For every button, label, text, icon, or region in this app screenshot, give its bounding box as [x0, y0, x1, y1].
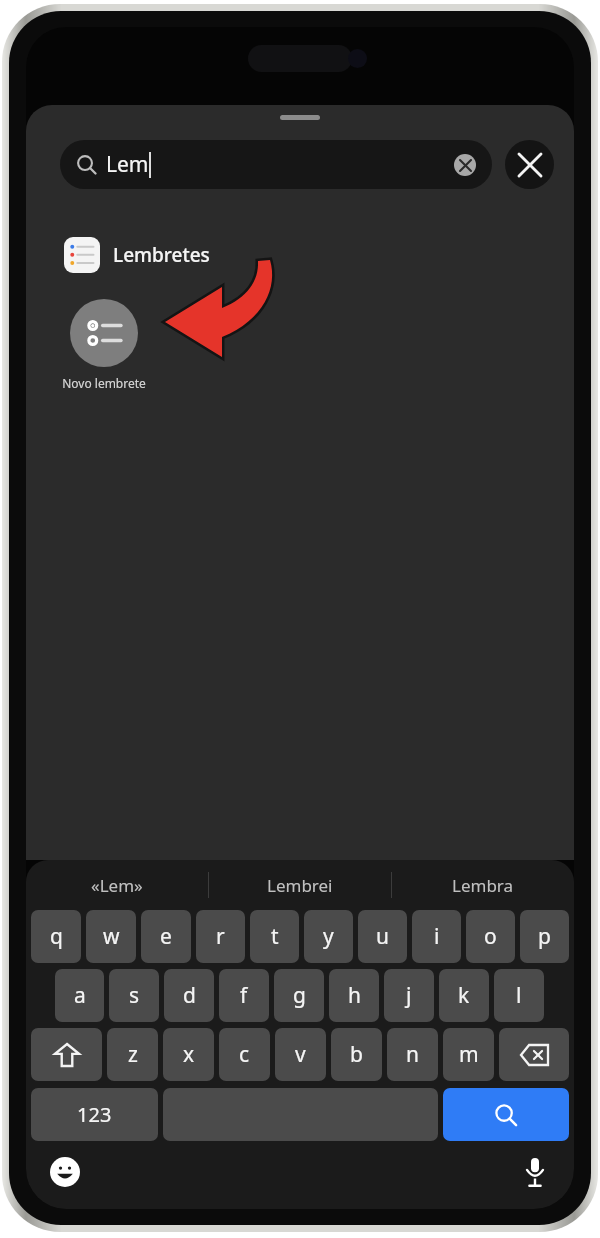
button[interactable]: l — [494, 969, 544, 1022]
button[interactable]: y — [304, 910, 353, 963]
button[interactable]: s — [109, 969, 159, 1022]
staticText: Lem — [106, 150, 149, 179]
button[interactable]: Emoji — [48, 1155, 82, 1189]
staticText: c — [239, 1040, 250, 1069]
button[interactable]: m — [443, 1028, 494, 1081]
button[interactable]: Novo lembrete — [60, 299, 148, 391]
button[interactable]: z — [107, 1028, 158, 1081]
staticText: h — [348, 981, 361, 1010]
button[interactable]: b — [331, 1028, 382, 1081]
button[interactable]: c — [219, 1028, 270, 1081]
button[interactable]: Search — [443, 1088, 569, 1141]
staticText: j — [406, 981, 412, 1010]
staticText: Lembrei — [267, 874, 333, 897]
button[interactable]: a — [55, 969, 104, 1022]
button[interactable]: u — [358, 910, 407, 963]
staticText: i — [434, 922, 440, 951]
staticText: n — [406, 1040, 419, 1069]
staticText: Lembretes — [113, 242, 210, 268]
button[interactable]: j — [384, 969, 434, 1022]
button[interactable]: d — [164, 969, 214, 1022]
staticText: g — [293, 981, 306, 1010]
staticText: q — [50, 922, 63, 951]
button[interactable]: Lembrei — [209, 860, 391, 910]
button[interactable]: h — [329, 969, 379, 1022]
staticText: p — [538, 922, 551, 951]
staticText: Lembra — [452, 874, 514, 897]
button[interactable]: Shift — [31, 1028, 102, 1081]
button[interactable]: Lembra — [392, 860, 574, 910]
button[interactable]: Lem — [60, 140, 492, 189]
button[interactable]: i — [412, 910, 461, 963]
staticText: o — [484, 922, 497, 951]
staticText: m — [459, 1040, 479, 1069]
button[interactable]: Voice input — [518, 1155, 552, 1189]
button[interactable]: 123 — [31, 1088, 158, 1141]
button[interactable]: Clear text — [454, 154, 476, 176]
button[interactable]: g — [274, 969, 324, 1022]
staticText: a — [74, 981, 86, 1010]
button[interactable]: v — [275, 1028, 326, 1081]
staticText: v — [295, 1040, 306, 1069]
staticText: f — [240, 981, 248, 1010]
staticText: l — [516, 981, 522, 1010]
button[interactable]: Backspace — [499, 1028, 569, 1081]
button[interactable]: n — [387, 1028, 438, 1081]
staticText: k — [458, 981, 470, 1010]
button[interactable]: q — [31, 910, 81, 963]
button[interactable]: Close search — [505, 140, 554, 189]
staticText: «Lem» — [91, 874, 143, 897]
staticText: 123 — [77, 1101, 112, 1128]
staticText: w — [103, 922, 120, 951]
button[interactable]: Lembretes — [26, 233, 574, 277]
staticText: s — [129, 981, 140, 1010]
staticText: z — [128, 1040, 138, 1069]
staticText: y — [323, 922, 334, 951]
button[interactable]: o — [466, 910, 515, 963]
staticText: b — [350, 1040, 363, 1069]
staticText: x — [183, 1040, 195, 1069]
button[interactable]: p — [520, 910, 569, 963]
staticText: t — [271, 922, 279, 951]
staticText: Novo lembrete — [62, 375, 146, 391]
button[interactable]: «Lem» — [26, 860, 208, 910]
staticText: r — [216, 922, 225, 951]
button[interactable]: r — [196, 910, 245, 963]
button[interactable]: k — [439, 969, 489, 1022]
button[interactable]: f — [219, 969, 269, 1022]
button[interactable]: t — [250, 910, 299, 963]
button[interactable]: x — [163, 1028, 214, 1081]
staticText: e — [160, 922, 172, 951]
button[interactable]: w — [86, 910, 136, 963]
staticText: u — [376, 922, 389, 951]
staticText: d — [183, 981, 196, 1010]
button[interactable]: e — [141, 910, 191, 963]
